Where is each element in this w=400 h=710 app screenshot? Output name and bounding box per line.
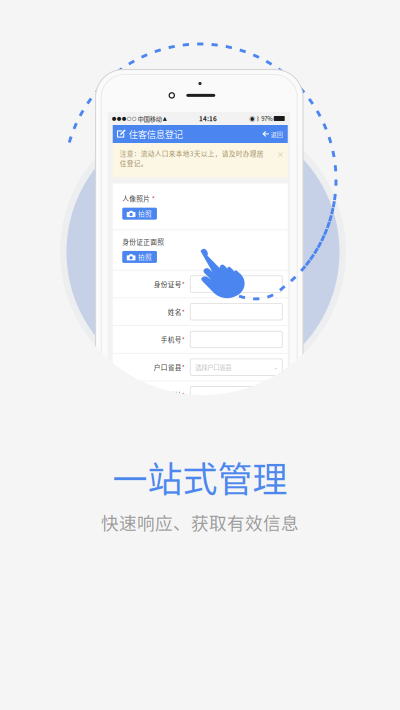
staticText: 人像照片 <box>122 193 150 203</box>
staticText: ●●● <box>112 115 127 122</box>
staticText: 注意：流动人口来本地3天以上，请及时办理居住登记。 <box>120 148 264 168</box>
staticText: 拍照 <box>138 209 152 218</box>
staticText: * <box>182 390 185 400</box>
staticText: 身份证号 <box>154 279 182 289</box>
staticText: 14:16 <box>199 114 217 123</box>
staticText: * <box>182 335 185 344</box>
staticText: 快速响应、获取有效信息 <box>101 509 299 535</box>
staticText: ◉ ᛒ 97% <box>249 114 272 123</box>
staticText: * <box>182 279 185 289</box>
staticText: 已详址 <box>161 390 182 400</box>
staticText: 一站式管理 <box>112 452 287 502</box>
staticText: 选择户口省县 <box>195 362 231 372</box>
staticText: 身份证正面照 <box>122 237 164 246</box>
staticText: 住客信息登记 <box>129 127 183 141</box>
staticText: × <box>277 148 284 159</box>
staticText: 中国移动 <box>137 114 163 123</box>
staticText: * <box>182 307 185 317</box>
staticText: ▲ <box>163 115 167 122</box>
staticText: 户口省县 <box>154 362 182 372</box>
staticText: 返回 <box>271 130 283 138</box>
button[interactable]: 拍照 <box>122 208 157 220</box>
button[interactable]: 拍照 <box>122 251 157 263</box>
button[interactable]: 返回 <box>262 130 283 138</box>
staticText: ○○ <box>127 115 137 122</box>
staticText: 姓名 <box>168 307 182 317</box>
staticText: * <box>152 193 155 203</box>
staticText: 拍照 <box>138 252 152 262</box>
staticText: 手机号 <box>161 335 182 344</box>
staticText: * <box>182 362 185 372</box>
staticText: ⌄ <box>273 364 278 370</box>
